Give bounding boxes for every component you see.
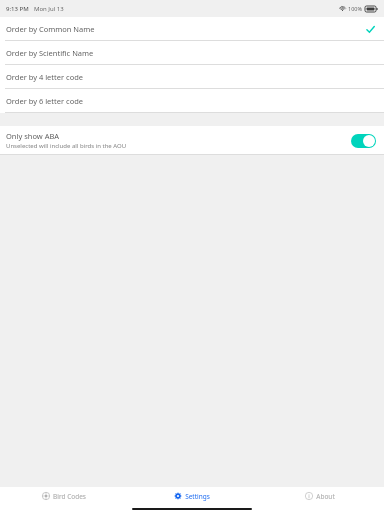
staticText: 9:13 PM [6,5,29,13]
staticText: About [316,492,335,501]
staticText: Mon Jul 13 [34,5,64,13]
staticText: Order by 6 letter code [6,96,84,106]
button[interactable]: Only show ABA toggle, on [351,134,376,148]
staticText: Order by Common Name [6,24,95,34]
staticText: Order by 4 letter code [6,72,84,82]
staticText: Unselected will include all birds in the… [6,142,127,150]
staticText: Only show ABA [6,131,60,141]
button[interactable]: Order by 6 letter code [0,89,384,113]
staticText: Bird Codes [53,492,86,501]
button[interactable]: Order by Scientific Name [0,41,384,65]
staticText: Settings [185,492,210,501]
button[interactable]: Bird Codes [0,487,128,505]
button[interactable]: Order by Common Name [0,17,384,41]
button[interactable]: About [256,487,384,505]
staticText: Order by Scientific Name [6,48,94,58]
other: Selected [366,25,375,34]
button[interactable]: Settings [128,487,256,505]
button[interactable]: Order by 4 letter code [0,65,384,89]
staticText: 100% [348,5,363,12]
button[interactable]: Only show ABA [0,126,384,155]
